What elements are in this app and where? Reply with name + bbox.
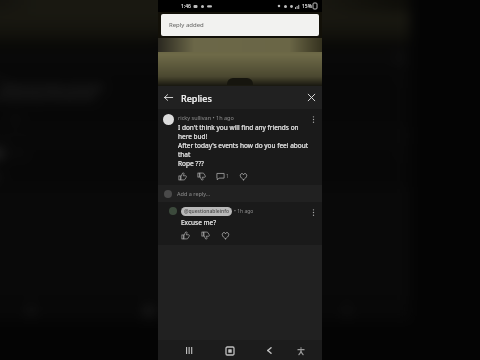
button[interactable]: Home (223, 344, 236, 357)
button[interactable]: Add a reply... (0, 127, 410, 144)
staticText: Add a reply... (177, 190, 211, 197)
button[interactable]: @questionableinfo (158, 202, 322, 245)
button[interactable]: More options (309, 115, 318, 124)
button[interactable]: ricky sullivan • 1h ago (0, 69, 410, 127)
staticText: Rope ??? (178, 159, 204, 168)
button[interactable]: Reply added (161, 14, 319, 36)
button[interactable]: Back (163, 92, 174, 103)
button[interactable]: More options (309, 208, 318, 217)
button[interactable]: 1 (216, 172, 229, 181)
button[interactable]: Like (181, 231, 190, 240)
staticText: Replies (181, 92, 212, 104)
button[interactable]: @questionableinfo (0, 144, 410, 187)
button[interactable]: Heart (221, 231, 230, 240)
staticText: I don't think you will find any friends … (178, 123, 309, 141)
button[interactable]: Add a reply... (158, 185, 322, 202)
button[interactable]: Recent apps (183, 344, 196, 357)
staticText: 1:46 (181, 3, 191, 10)
staticText: • 1h ago (234, 208, 254, 215)
button[interactable]: Like (178, 172, 187, 181)
staticText: After today's events how do you feel abo… (178, 141, 309, 159)
button[interactable]: Dislike (197, 172, 206, 181)
button[interactable]: Close (306, 92, 317, 103)
staticText: Reply added (169, 21, 204, 29)
staticText: ricky sullivan • 1h ago (178, 114, 234, 121)
button[interactable]: Heart (239, 172, 248, 181)
staticText: 1 (226, 173, 229, 180)
staticText: @questionableinfo (184, 208, 229, 215)
staticText: 15% (302, 3, 312, 10)
button[interactable]: ricky sullivan • 1h ago (158, 109, 322, 185)
button[interactable]: Accessibility (294, 344, 307, 357)
button[interactable]: Dislike (201, 231, 210, 240)
staticText: Excuse me? (181, 218, 217, 227)
button[interactable]: Back (263, 344, 276, 357)
